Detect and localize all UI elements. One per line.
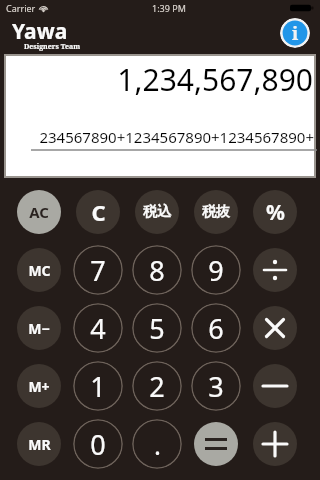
- button[interactable]: 3: [191, 361, 241, 411]
- button[interactable]: 税込: [135, 190, 179, 234]
- button[interactable]: Information: [280, 18, 310, 48]
- button[interactable]: 0: [73, 419, 123, 469]
- staticText: 2: [149, 368, 165, 405]
- button[interactable]: 5: [132, 303, 182, 353]
- button[interactable]: M+: [17, 364, 61, 408]
- button[interactable]: 7: [73, 245, 123, 295]
- button[interactable]: Plus: [253, 422, 297, 466]
- staticText: MR: [28, 435, 51, 454]
- staticText: Carrier: [6, 2, 36, 14]
- staticText: M−: [28, 319, 50, 338]
- staticText: 税込: [143, 203, 171, 221]
- button[interactable]: Equals: [194, 422, 238, 466]
- button[interactable]: MR: [17, 422, 61, 466]
- button[interactable]: 6: [191, 303, 241, 353]
- button[interactable]: 8: [132, 245, 182, 295]
- staticText: 8: [149, 252, 165, 289]
- staticText: AC: [29, 202, 49, 222]
- staticText: 7: [90, 252, 106, 289]
- staticText: 234567890+1234567890+1234567890+: [39, 127, 314, 147]
- button[interactable]: C: [76, 190, 120, 234]
- staticText: 税抜: [202, 203, 230, 221]
- button[interactable]: Multiply: [253, 306, 297, 350]
- staticText: 6: [208, 310, 224, 347]
- staticText: 3: [208, 368, 224, 405]
- button[interactable]: MC: [17, 248, 61, 292]
- button[interactable]: 1: [73, 361, 123, 411]
- button[interactable]: 税抜: [194, 190, 238, 234]
- staticText: 1,234,567,890: [117, 59, 313, 100]
- staticText: 0: [90, 426, 106, 463]
- staticText: 1: [90, 368, 106, 405]
- staticText: Designers Team: [24, 42, 81, 52]
- button[interactable]: Minus: [253, 364, 297, 408]
- staticText: 5: [149, 310, 165, 347]
- staticText: MC: [28, 261, 51, 280]
- button[interactable]: Divide: [253, 248, 297, 292]
- staticText: 9: [208, 252, 224, 289]
- staticText: 4: [90, 310, 106, 347]
- staticText: i: [292, 21, 299, 46]
- staticText: 1:39 PM: [152, 2, 186, 14]
- staticText: Yawa: [12, 17, 68, 46]
- button[interactable]: .: [132, 419, 182, 469]
- button[interactable]: %: [253, 190, 297, 234]
- staticText: %: [266, 198, 285, 227]
- staticText: M+: [28, 377, 50, 396]
- button[interactable]: AC: [17, 190, 61, 234]
- button[interactable]: 2: [132, 361, 182, 411]
- button[interactable]: M−: [17, 306, 61, 350]
- button[interactable]: 9: [191, 245, 241, 295]
- button[interactable]: 4: [73, 303, 123, 353]
- staticText: .: [154, 427, 161, 462]
- staticText: C: [91, 197, 106, 227]
